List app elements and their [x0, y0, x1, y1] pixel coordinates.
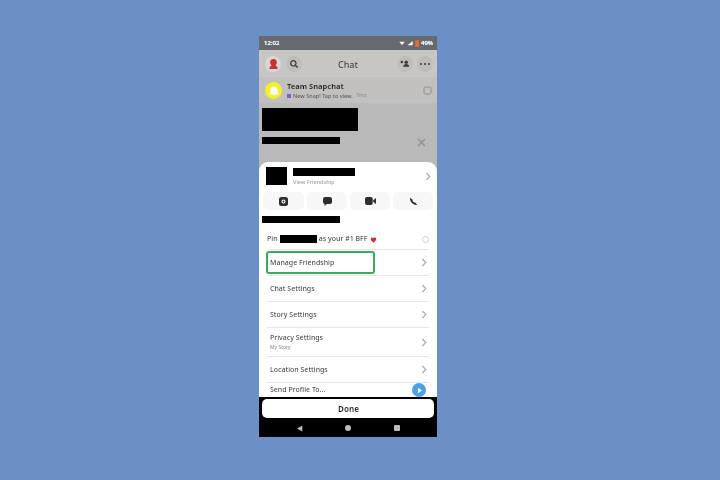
button[interactable]: Chat Settings — [270, 276, 426, 301]
button[interactable]: Team Snapchat — [265, 77, 431, 103]
staticText: My Story — [270, 344, 291, 351]
button[interactable]: Chat — [307, 192, 347, 210]
button[interactable]: Story Settings — [270, 302, 426, 327]
staticText: Manage Friendship — [270, 258, 335, 268]
staticText: View Friendship — [293, 178, 335, 185]
button[interactable]: Voice call — [393, 192, 433, 210]
staticText: Done — [338, 403, 359, 414]
button[interactable]: Location Settings — [270, 357, 426, 382]
staticText: Chat — [338, 58, 358, 70]
staticText: Pin — [267, 234, 280, 244]
staticText: Privacy Settings — [270, 333, 324, 343]
staticText: 7mo — [356, 92, 367, 99]
staticText: as your #1 BFF — [317, 234, 370, 244]
button[interactable]: Home — [339, 419, 357, 437]
button[interactable]: Search — [286, 56, 302, 72]
button[interactable]: Done — [262, 399, 434, 418]
staticText: Story Settings — [270, 310, 317, 320]
button[interactable]: Close — [414, 135, 428, 149]
staticText: 49% — [421, 39, 433, 47]
button[interactable]: Camera — [263, 192, 304, 210]
button[interactable]: Recent apps — [388, 419, 406, 437]
staticText: Team Snapchat — [287, 81, 344, 91]
button[interactable]: Back — [290, 419, 308, 437]
button[interactable]: Pin — [267, 229, 429, 249]
button[interactable]: Profile — [265, 56, 281, 72]
staticText: New Snap! Tap to view. — [293, 92, 353, 99]
staticText: Location Settings — [270, 365, 328, 375]
button[interactable]: Video call — [350, 192, 390, 210]
button[interactable]: Send Profile To... — [270, 383, 426, 397]
button[interactable]: Manage Friendship — [270, 250, 426, 275]
staticText: Chat Settings — [270, 284, 315, 294]
staticText: Send Profile To... — [270, 385, 326, 395]
button[interactable]: Add friend — [397, 56, 413, 72]
button[interactable]: View Friendship — [266, 162, 430, 190]
button[interactable]: Privacy Settings — [270, 328, 426, 356]
button[interactable]: More options — [417, 56, 433, 72]
staticText: 12:02 — [264, 39, 280, 47]
